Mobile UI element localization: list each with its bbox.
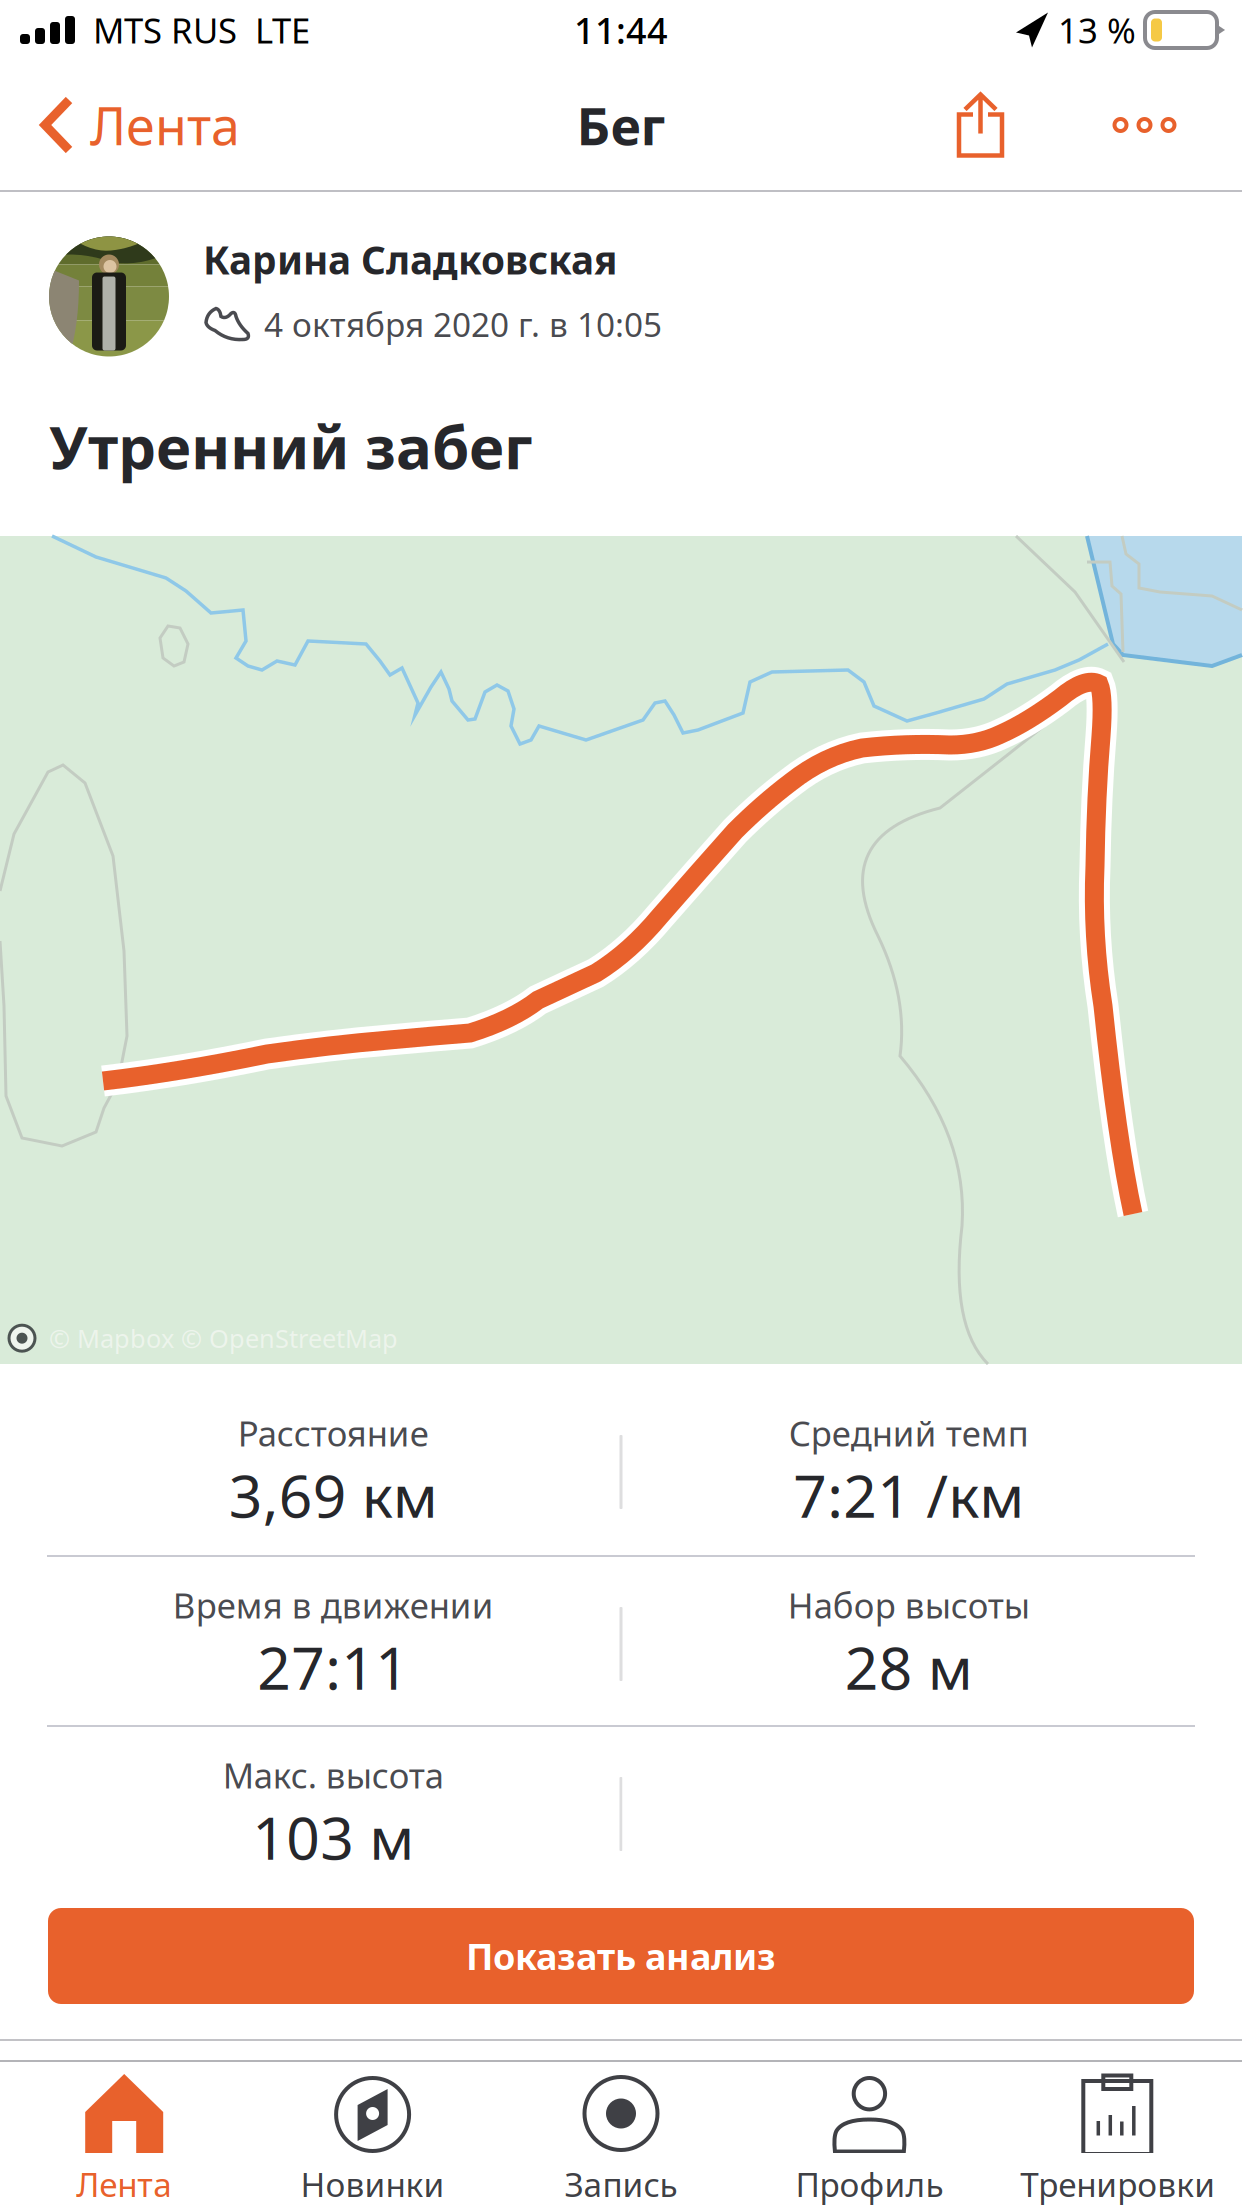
- staticText: © Mapbox © OpenStreetMap: [35, 1321, 398, 1355]
- button[interactable]: Share: [934, 75, 1027, 174]
- button[interactable]: Тренировки: [994, 2062, 1242, 2208]
- staticText: Лента: [76, 2162, 172, 2206]
- button[interactable]: Карина Сладковская: [0, 235, 1242, 355]
- staticText: 4 октября 2020 г. в 10:05: [264, 302, 662, 346]
- staticText: 13 %: [1049, 7, 1145, 53]
- staticText: Расстояние: [238, 1410, 429, 1456]
- staticText: Средний темп: [789, 1410, 1029, 1456]
- staticText: Новинки: [301, 2162, 445, 2206]
- button[interactable]: Запись: [497, 2062, 745, 2208]
- button[interactable]: More options: [1091, 75, 1198, 174]
- staticText: 27:11: [257, 1628, 409, 1706]
- staticText: Набор высоты: [788, 1582, 1030, 1628]
- staticText: Бег: [576, 90, 665, 160]
- staticText: 28 м: [845, 1628, 973, 1706]
- staticText: Карина Сладковская: [203, 234, 617, 285]
- button[interactable]: Новинки: [248, 2062, 497, 2208]
- staticText: Лента: [90, 90, 240, 160]
- button[interactable]: Профиль: [745, 2062, 994, 2208]
- button[interactable]: Лента: [0, 2062, 248, 2208]
- button[interactable]: Лента: [0, 66, 264, 184]
- staticText: Утренний забег: [49, 406, 533, 486]
- staticText: Профиль: [795, 2162, 943, 2206]
- staticText: Макс. высота: [223, 1752, 444, 1798]
- staticText: 3,69 км: [229, 1456, 438, 1534]
- staticText: 11:44: [574, 6, 668, 54]
- staticText: Тренировки: [1020, 2162, 1215, 2206]
- button[interactable]: Показать анализ: [0, 1908, 1242, 2004]
- staticText: Запись: [564, 2162, 677, 2206]
- staticText: Время в движении: [173, 1582, 494, 1628]
- staticText: 7:21 /км: [793, 1456, 1024, 1534]
- staticText: Показать анализ: [466, 1932, 776, 1980]
- staticText: MTS RUS LTE: [75, 7, 310, 53]
- staticText: 103 м: [252, 1798, 414, 1876]
